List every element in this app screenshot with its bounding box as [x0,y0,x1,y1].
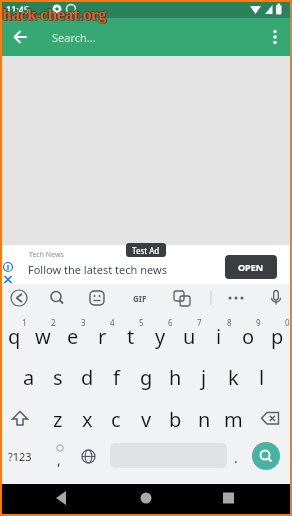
button[interactable]: Tech News [0,245,292,284]
button[interactable]: t [116,321,146,351]
button[interactable]: u [174,321,204,351]
staticText: k [228,364,239,391]
button[interactable]: , [44,444,74,474]
button[interactable]: g [131,362,161,392]
staticText: hack-cheat.org [3,5,108,25]
button[interactable]: m [218,404,248,434]
staticText: j [201,364,207,391]
button[interactable]: e [58,321,88,351]
staticText: x [82,406,93,433]
button[interactable]: x [72,404,102,434]
staticText: q [8,323,21,350]
staticText: . [234,448,238,467]
staticText: r [98,323,107,350]
staticText: OPEN [238,261,264,273]
staticText: 5 [139,317,144,328]
staticText: t [127,323,135,350]
button[interactable]: s [43,362,73,392]
staticText: d [81,364,94,391]
button[interactable] [5,404,35,434]
button[interactable]: OPEN [225,255,277,279]
staticText: o [242,323,255,350]
button[interactable]: k [218,362,248,392]
staticText: Follow the latest tech news [28,262,167,277]
button[interactable] [0,484,98,516]
button[interactable]: w [28,321,58,351]
button[interactable]: i [204,321,234,351]
staticText: h [169,364,182,391]
button[interactable]: h [160,362,190,392]
staticText: z [53,406,63,433]
staticText: m [224,406,243,433]
button[interactable]: GIF [125,290,155,306]
button[interactable] [252,442,280,470]
button[interactable] [195,484,292,516]
button[interactable] [260,22,290,52]
staticText: y [155,323,166,350]
staticText: hack-cheat.org [2,4,107,24]
staticText: f [113,364,120,391]
staticText: Search... [52,30,96,45]
staticText: a [23,364,35,391]
button[interactable]: j [189,362,219,392]
staticText: Tech News [29,250,64,260]
button[interactable] [73,441,103,471]
button[interactable]: c [101,404,131,434]
staticText: 9 [256,317,261,328]
button[interactable]: b [160,404,190,434]
button[interactable] [255,404,285,434]
staticText: 4 [110,317,115,328]
staticText: i [216,323,222,350]
staticText: hack-cheat.org [2,3,107,23]
staticText: 2 [51,317,56,328]
staticText: hack-cheat.org [1,4,106,24]
staticText: e [67,323,79,350]
staticText: hack-cheat.org [3,4,108,24]
staticText: GIF [133,293,147,304]
staticText: v [141,406,152,433]
button[interactable]: v [131,404,161,434]
staticText: c [111,406,121,433]
staticText: w [35,323,51,350]
staticText: Test Ad [132,245,160,256]
staticText: 7 [197,317,202,328]
button[interactable]: d [72,362,102,392]
button[interactable]: q [0,321,29,351]
staticText: 6 [168,317,173,328]
button[interactable]: ?123 [0,441,40,471]
button[interactable]: f [101,362,131,392]
button[interactable]: p [262,321,292,351]
button[interactable] [6,22,36,52]
staticText: n [198,406,211,433]
button[interactable]: z [43,404,73,434]
staticText: , [57,450,61,469]
button[interactable]: . [221,442,251,472]
button[interactable]: r [87,321,117,351]
staticText: p [271,323,284,350]
button[interactable]: o [233,321,263,351]
button[interactable]: y [145,321,175,351]
staticText: 3 [81,317,86,328]
button[interactable] [98,484,195,516]
staticText: l [259,364,265,391]
staticText: s [53,364,63,391]
button[interactable]: n [189,404,219,434]
staticText: ?123 [8,449,32,464]
staticText: u [183,323,196,350]
staticText: 8 [227,317,232,328]
staticText: 1 [22,317,27,328]
button[interactable]: a [14,362,44,392]
staticText: 0 [285,317,290,328]
button[interactable]: l [247,362,277,392]
staticText: 11:45 [6,3,30,15]
staticText: b [169,406,182,433]
staticText: g [140,364,153,391]
